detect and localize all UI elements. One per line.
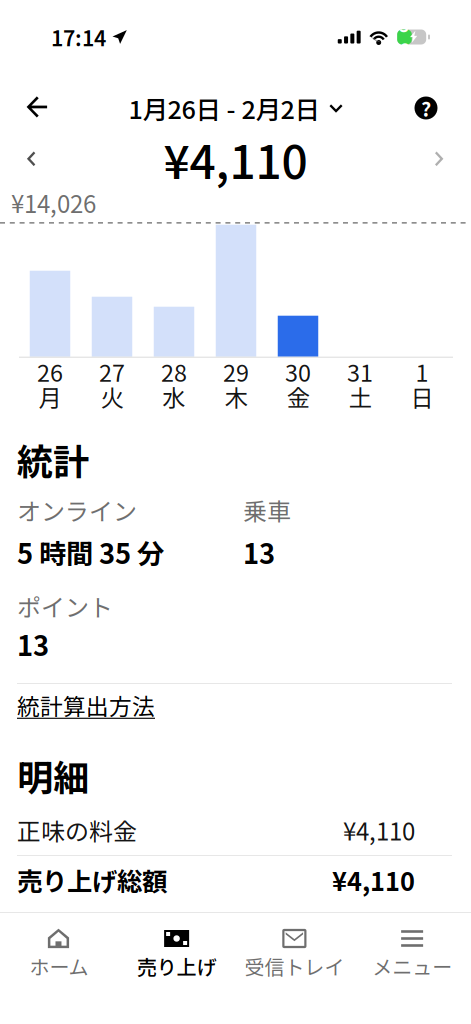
staticText: 売り上げ <box>137 951 217 980</box>
button[interactable]: 受信トレイ <box>235 914 353 1024</box>
staticText: 乗車 <box>243 493 291 527</box>
staticText: ホーム <box>29 951 88 980</box>
staticText: 売り上げ総額 <box>17 862 167 898</box>
staticText: オンライン <box>17 493 137 527</box>
staticText: 1 <box>415 355 428 389</box>
staticText: 13 <box>17 624 49 664</box>
staticText: 金 <box>286 380 309 414</box>
staticText: 1月26日 - 2月2日 <box>128 90 319 126</box>
button[interactable]: 統計算出方法 <box>17 690 155 720</box>
staticText: 明細 <box>17 749 89 801</box>
button[interactable]: 1月26日 - 2月2日 <box>128 84 343 132</box>
staticText: 統計 <box>17 433 89 485</box>
staticText: ¥4,110 <box>332 862 415 898</box>
staticText: ポイント <box>17 589 113 623</box>
staticText: 30 <box>285 355 311 389</box>
button[interactable]: 前の期間 <box>4 132 58 186</box>
staticText: メニュー <box>372 951 452 980</box>
button[interactable]: 売り上げ <box>118 914 236 1024</box>
staticText: 水 <box>162 380 185 414</box>
staticText: 日 <box>410 380 433 414</box>
staticText: 正味の料金 <box>17 813 137 847</box>
button[interactable]: 戻る <box>11 83 65 133</box>
staticText: 28 <box>161 355 187 389</box>
staticText: 26 <box>37 355 63 389</box>
button[interactable]: 次の期間 <box>413 132 467 186</box>
staticText: 月 <box>38 380 61 414</box>
staticText: 36 <box>399 13 409 61</box>
staticText: 火 <box>100 380 123 414</box>
staticText: 木 <box>224 380 247 414</box>
staticText: ? <box>421 93 431 122</box>
button[interactable]: ヘルプ <box>399 83 453 133</box>
staticText: 29 <box>223 355 249 389</box>
staticText: 13 <box>243 532 275 572</box>
staticText: 土 <box>348 380 371 414</box>
staticText: 31 <box>347 355 373 389</box>
button[interactable]: ホーム <box>0 914 118 1024</box>
staticText: ¥4,110 <box>343 813 415 847</box>
staticText: ¥4,110 <box>163 126 307 192</box>
staticText: ¥14,026 <box>11 185 96 220</box>
staticText: 5 時間 35 分 <box>17 532 164 572</box>
staticText: 27 <box>99 355 125 389</box>
staticText: 統計算出方法 <box>17 689 155 721</box>
staticText: 17:14 <box>51 22 106 52</box>
button[interactable]: メニュー <box>353 914 471 1024</box>
staticText: 受信トレイ <box>244 951 344 980</box>
